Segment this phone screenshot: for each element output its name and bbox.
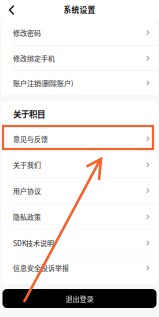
button[interactable]: 修改密码 bbox=[1, 20, 157, 45]
staticText: 修改密码 bbox=[13, 28, 41, 38]
button[interactable]: 退出登录 bbox=[0, 289, 159, 308]
button[interactable]: 修改绑定手机 bbox=[1, 46, 157, 70]
button[interactable]: 信息安全投诉举报 bbox=[1, 256, 157, 279]
staticText: SDK技术说明 bbox=[13, 238, 54, 248]
staticText: 关于积目 bbox=[13, 107, 45, 120]
button[interactable]: SDK技术说明 bbox=[1, 230, 157, 256]
button[interactable]: 隐私政策 bbox=[1, 204, 157, 230]
button[interactable]: 用户协议 bbox=[1, 178, 157, 203]
staticText: 意见与反馈 bbox=[13, 134, 48, 144]
staticText: 用户协议 bbox=[13, 186, 41, 196]
staticText: 系统设置 bbox=[63, 4, 95, 15]
button[interactable]: 关于我们 bbox=[1, 152, 157, 177]
staticText: 信息安全投诉举报 bbox=[13, 263, 69, 273]
staticText: 隐私政策 bbox=[13, 212, 41, 222]
staticText: 账户注销(删除账户) bbox=[13, 78, 73, 88]
button[interactable]: Back bbox=[0, 1, 21, 19]
button[interactable]: 意见与反馈 bbox=[1, 126, 157, 151]
staticText: 退出登录 bbox=[65, 293, 93, 304]
button[interactable]: 账户注销(删除账户) bbox=[1, 71, 157, 95]
staticText: 关于我们 bbox=[13, 160, 41, 170]
staticText: 修改绑定手机 bbox=[13, 53, 55, 63]
